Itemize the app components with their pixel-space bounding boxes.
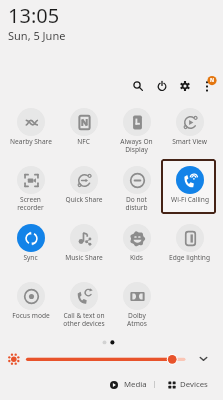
button[interactable] (24, 350, 188, 369)
button[interactable]: Search (127, 75, 149, 97)
button[interactable]: Call & text on other devices (57, 280, 110, 328)
button[interactable]: Wi-Fi Calling (163, 164, 216, 204)
staticText: 13:05 (8, 2, 60, 29)
staticText: Screen recorder (17, 195, 44, 212)
staticText: Quick Share (65, 195, 103, 204)
button[interactable]: Expand (195, 350, 212, 367)
button[interactable]: More options (197, 73, 219, 95)
staticText: Smart View (172, 137, 207, 146)
button[interactable]: Smart View (163, 106, 216, 146)
button[interactable]: Settings (174, 75, 196, 97)
button[interactable]: Screen recorder (4, 164, 57, 212)
staticText: Sync (23, 253, 38, 262)
button[interactable] (161, 159, 216, 214)
button[interactable]: Power (151, 75, 173, 97)
staticText: Sun, 5 June (8, 28, 66, 43)
staticText: Music Share (65, 253, 103, 262)
button[interactable]: Edge lighting (163, 222, 216, 262)
staticText: Kids (130, 253, 143, 262)
button[interactable]: Kids (110, 222, 163, 262)
staticText: Edge lighting (169, 253, 210, 262)
staticText: Nearby Share (10, 137, 52, 146)
button[interactable]: Devices (164, 377, 208, 392)
staticText: Focus mode (12, 311, 50, 320)
staticText: Do not disturb (125, 195, 148, 212)
button[interactable]: Nearby Share (4, 106, 57, 146)
button[interactable]: Quick Share (57, 164, 110, 204)
button[interactable]: Always On Display (110, 106, 163, 154)
button[interactable]: Brightness (5, 350, 23, 368)
staticText: N (210, 77, 215, 84)
staticText: NFC (77, 137, 90, 146)
staticText: Wi-Fi Calling (171, 195, 209, 204)
button[interactable]: NFC (57, 106, 110, 146)
staticText: Dolby Atmos (127, 311, 147, 328)
button[interactable]: Sync (4, 222, 57, 262)
button[interactable]: Music Share (57, 222, 110, 262)
button[interactable]: Media (107, 377, 147, 392)
button[interactable]: Focus mode (4, 280, 57, 320)
button[interactable]: Do not disturb (110, 164, 163, 212)
staticText: Media (124, 379, 147, 390)
staticText: Always On Display (120, 137, 153, 154)
staticText: Devices (180, 379, 208, 390)
button[interactable]: Dolby Atmos (110, 280, 163, 328)
staticText: Call & text on other devices (63, 311, 105, 328)
